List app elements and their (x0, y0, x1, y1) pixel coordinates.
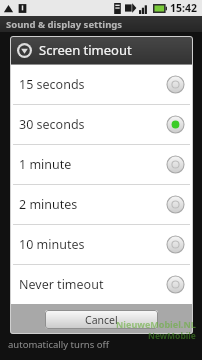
button[interactable]: Never timeout (10, 265, 193, 304)
staticText: 15 seconds (19, 76, 85, 93)
button[interactable]: 10 minutes (10, 225, 193, 264)
staticText: Screen timeout (39, 41, 132, 59)
staticText: Sound & display settings (6, 18, 123, 31)
staticText: 15:42 (170, 1, 197, 15)
staticText: 2 minutes (19, 196, 78, 213)
staticText: 30 seconds (19, 116, 85, 133)
button[interactable]: Cancel (45, 310, 158, 329)
staticText: 1 minute (19, 156, 72, 173)
button[interactable]: 15 seconds (10, 65, 193, 104)
staticText: Screen (12, 316, 54, 334)
button[interactable]: 1 minute (10, 145, 193, 184)
staticText: Never timeout (19, 276, 104, 293)
staticText: NewMobile (148, 330, 196, 342)
staticText: NieuweMobiel.NL (116, 318, 196, 330)
button[interactable]: 30 seconds (10, 105, 193, 144)
staticText: Cancel (85, 313, 118, 327)
staticText: automatically turns off (8, 338, 109, 351)
button[interactable]: 2 minutes (10, 185, 193, 224)
staticText: 10 minutes (19, 236, 85, 253)
